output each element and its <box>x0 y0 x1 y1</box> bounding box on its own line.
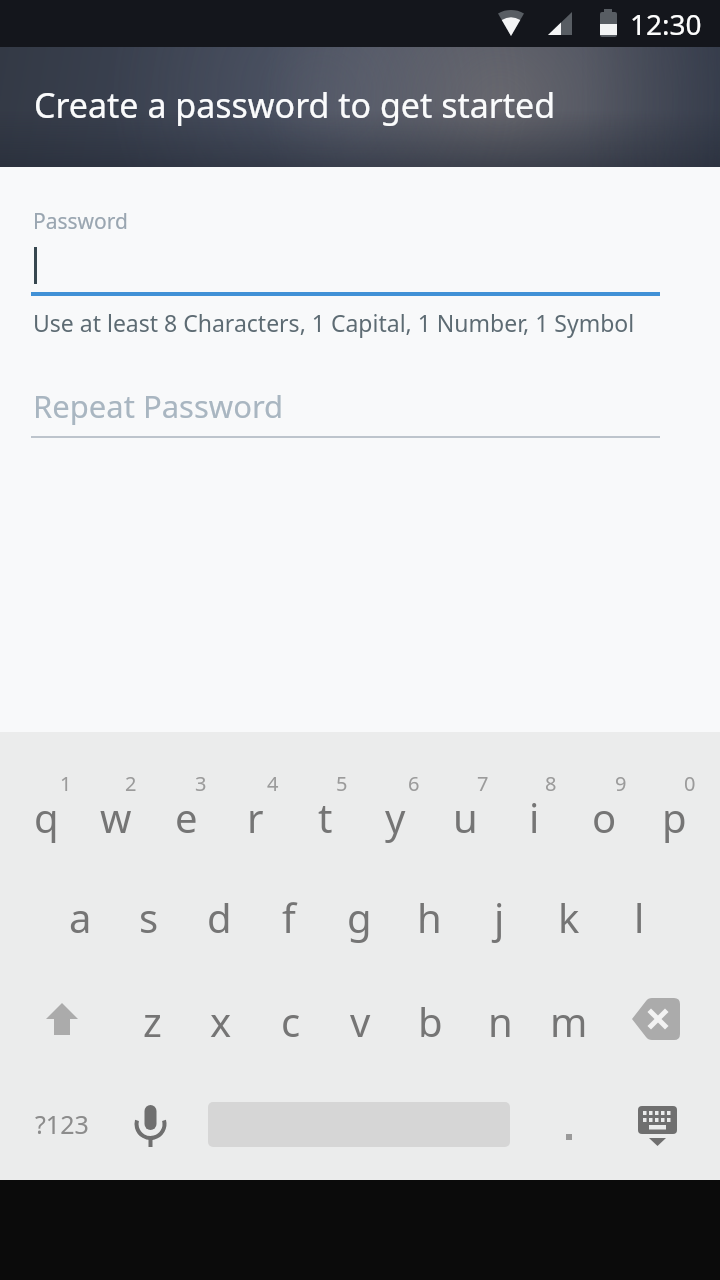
button[interactable]: p <box>639 785 709 849</box>
button[interactable]: l <box>604 885 674 949</box>
button[interactable] <box>534 1094 604 1154</box>
staticText: t <box>318 790 333 844</box>
button[interactable] <box>31 238 660 292</box>
staticText: u <box>453 790 478 844</box>
staticText: h <box>417 890 442 944</box>
button[interactable]: t <box>290 785 360 849</box>
staticText: Create a password to get started <box>34 82 556 128</box>
staticText: v <box>350 994 371 1048</box>
staticText: j <box>494 890 505 944</box>
button[interactable]: o <box>569 785 639 849</box>
staticText: 8 <box>545 770 557 797</box>
button[interactable]: 2 <box>96 751 166 815</box>
button[interactable]: m <box>534 989 604 1053</box>
staticText: d <box>207 890 232 944</box>
staticText: c <box>281 994 301 1048</box>
staticText: 3 <box>195 770 207 797</box>
staticText: b <box>418 994 443 1048</box>
button[interactable]: e <box>151 785 221 849</box>
button[interactable]: ?123 <box>22 1094 102 1154</box>
staticText: i <box>529 790 540 844</box>
button[interactable]: i <box>499 785 569 849</box>
staticText: 5 <box>336 770 348 797</box>
button[interactable]: k <box>534 885 604 949</box>
staticText: 2 <box>125 770 137 797</box>
button[interactable]: u <box>430 785 500 849</box>
staticText: a <box>69 890 92 944</box>
staticText: 6 <box>408 770 420 797</box>
button[interactable]: d <box>184 885 254 949</box>
staticText: e <box>175 790 198 844</box>
staticText: 7 <box>477 770 489 797</box>
staticText: 0 <box>684 770 696 797</box>
button[interactable]: 0 <box>655 751 720 815</box>
staticText: k <box>558 890 580 944</box>
staticText: Repeat Password <box>33 385 284 427</box>
staticText: ?123 <box>35 1107 89 1141</box>
staticText: p <box>662 790 687 844</box>
button[interactable]: 9 <box>586 751 656 815</box>
button[interactable]: 7 <box>448 751 518 815</box>
staticText: 12:30 <box>630 5 702 43</box>
button[interactable]: v <box>325 989 395 1053</box>
staticText: w <box>100 790 132 844</box>
button[interactable]: f <box>254 885 324 949</box>
button[interactable]: j <box>464 885 534 949</box>
button[interactable] <box>115 1094 185 1154</box>
staticText: Password <box>33 207 128 236</box>
staticText: o <box>592 790 617 844</box>
staticText: z <box>143 994 162 1048</box>
staticText: l <box>634 890 645 944</box>
button[interactable]: n <box>465 989 535 1053</box>
staticText: 1 <box>60 770 72 797</box>
button[interactable]: x <box>186 989 256 1053</box>
staticText: n <box>488 994 513 1048</box>
staticText: Use at least 8 Characters, 1 Capital, 1 … <box>33 307 635 338</box>
button[interactable]: b <box>395 989 465 1053</box>
button[interactable]: h <box>394 885 464 949</box>
button[interactable]: a <box>45 885 115 949</box>
button[interactable]: z <box>117 989 187 1053</box>
button[interactable] <box>27 989 97 1053</box>
staticText: 9 <box>615 770 627 797</box>
button[interactable]: q <box>11 785 81 849</box>
button[interactable]: 8 <box>516 751 586 815</box>
button[interactable]: s <box>114 885 184 949</box>
staticText: x <box>210 994 232 1048</box>
button[interactable]: r <box>220 785 290 849</box>
button[interactable]: 6 <box>379 751 449 815</box>
button[interactable] <box>622 989 692 1053</box>
staticText: 4 <box>267 770 279 797</box>
staticText: s <box>139 890 159 944</box>
button[interactable]: 1 <box>31 751 101 815</box>
staticText: y <box>385 790 406 844</box>
button[interactable]: w <box>81 785 151 849</box>
staticText: m <box>550 994 588 1048</box>
staticText: f <box>282 890 296 944</box>
button[interactable]: 5 <box>307 751 377 815</box>
button[interactable] <box>622 1094 692 1154</box>
staticText: q <box>34 790 59 844</box>
staticText: g <box>347 890 372 944</box>
button[interactable]: g <box>324 885 394 949</box>
staticText: r <box>247 790 264 844</box>
button[interactable]: Repeat Password <box>31 378 660 434</box>
button[interactable]: y <box>360 785 430 849</box>
button[interactable]: c <box>256 989 326 1053</box>
button[interactable]: 3 <box>166 751 236 815</box>
button[interactable]: 4 <box>238 751 308 815</box>
